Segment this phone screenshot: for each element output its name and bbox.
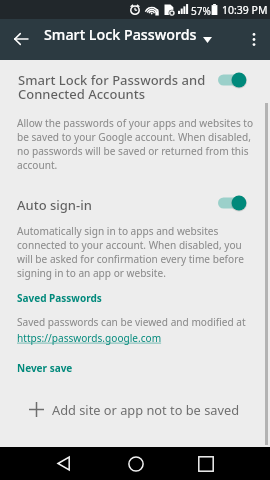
staticText: Saved passwords can be viewed and modifi… [17,315,246,329]
staticText: Smart Lock Passwords [44,25,197,44]
button[interactable]: Never save [17,361,73,375]
button[interactable]: Saved Passwords [17,291,102,305]
staticText: 57% [191,4,211,18]
staticText: Smart Lock for Passwords and Connected A… [18,71,210,103]
staticText: Automatically sign in to apps and websit… [17,224,254,280]
button[interactable]: Back [45,447,82,480]
staticText: Auto sign-in [17,196,92,214]
staticText: Allow the passwords of your apps and web… [17,116,254,172]
button[interactable]: https://passwords.google.com [17,331,162,345]
button[interactable]: Home [117,447,154,480]
button[interactable]: More options [240,25,268,53]
button[interactable] [216,70,247,90]
button[interactable]: Back [7,25,35,53]
button[interactable]: Recent apps [187,447,224,480]
button[interactable]: Change account [196,28,219,51]
button[interactable]: Add site or app not to be saved [0,392,270,426]
staticText: 10:39 PM [222,3,268,17]
staticText: Add site or app not to be saved [52,401,240,418]
button[interactable] [216,193,247,213]
